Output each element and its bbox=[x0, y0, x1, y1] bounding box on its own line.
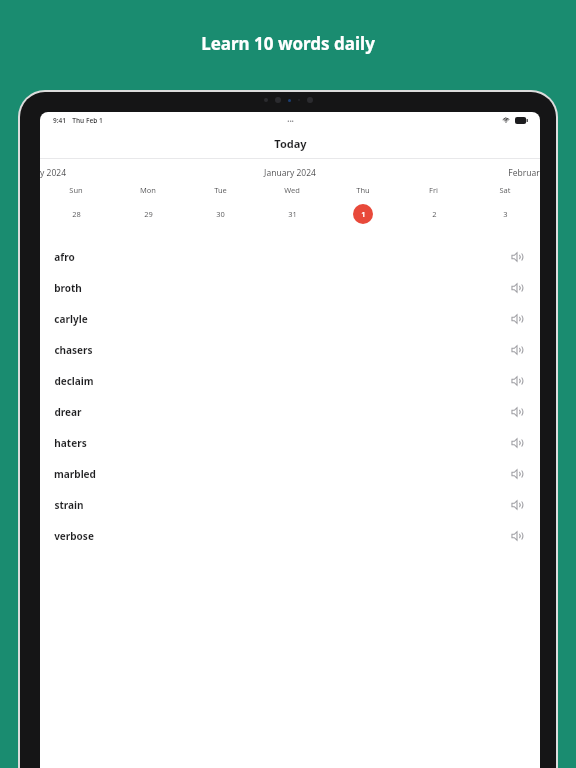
button[interactable]: Wed bbox=[256, 185, 327, 224]
button[interactable]: Tue bbox=[184, 185, 256, 224]
staticText: Tue bbox=[214, 185, 227, 195]
button[interactable]: broth bbox=[40, 272, 540, 303]
button[interactable]: marbled bbox=[40, 458, 540, 489]
button[interactable]: Mon bbox=[112, 185, 184, 224]
staticText: 9:41 bbox=[53, 116, 66, 125]
staticText: Thu bbox=[356, 185, 370, 195]
staticText: marbled bbox=[54, 467, 96, 481]
button[interactable]: verbose bbox=[40, 520, 540, 551]
button[interactable]: afro bbox=[40, 241, 540, 272]
staticText: strain bbox=[54, 498, 84, 512]
staticText: 2 bbox=[432, 209, 437, 219]
staticText: Februar bbox=[508, 167, 540, 179]
staticText: carlyle bbox=[54, 312, 88, 326]
button[interactable]: Sat bbox=[469, 185, 540, 224]
button[interactable]: strain bbox=[40, 489, 540, 520]
staticText: Sun bbox=[69, 185, 83, 195]
staticText: 31 bbox=[288, 209, 297, 219]
staticText: afro bbox=[54, 250, 75, 264]
button[interactable]: Pronounce haters bbox=[508, 434, 526, 452]
staticText: Sat bbox=[499, 185, 511, 195]
staticText: declaim bbox=[54, 374, 94, 388]
staticText: verbose bbox=[54, 529, 94, 543]
button[interactable]: Sun bbox=[40, 185, 112, 224]
button[interactable]: declaim bbox=[40, 365, 540, 396]
staticText: 1 bbox=[361, 209, 366, 219]
button[interactable]: Pronounce drear bbox=[508, 403, 526, 421]
staticText: ··· bbox=[287, 115, 294, 126]
button[interactable]: haters bbox=[40, 427, 540, 458]
staticText: Mon bbox=[140, 185, 156, 195]
staticText: Today bbox=[274, 136, 307, 151]
staticText: Wed bbox=[284, 185, 300, 195]
staticText: Thu Feb 1 bbox=[72, 116, 103, 125]
button[interactable]: carlyle bbox=[40, 303, 540, 334]
staticText: broth bbox=[54, 281, 82, 295]
staticText: 28 bbox=[72, 209, 81, 219]
button[interactable]: Fri bbox=[398, 185, 469, 224]
button[interactable]: Pronounce strain bbox=[508, 496, 526, 514]
button[interactable]: Pronounce marbled bbox=[508, 465, 526, 483]
button[interactable]: drear bbox=[40, 396, 540, 427]
button[interactable]: Pronounce chasers bbox=[508, 341, 526, 359]
button[interactable]: Pronounce broth bbox=[508, 279, 526, 297]
button[interactable]: Thu bbox=[327, 185, 398, 224]
staticText: y 2024 bbox=[40, 167, 66, 179]
staticText: Fri bbox=[429, 185, 438, 195]
staticText: Learn 10 words daily bbox=[201, 32, 375, 55]
button[interactable]: Pronounce verbose bbox=[508, 527, 526, 545]
staticText: 29 bbox=[144, 209, 153, 219]
staticText: January 2024 bbox=[264, 167, 316, 179]
staticText: 30 bbox=[216, 209, 225, 219]
staticText: drear bbox=[54, 405, 82, 419]
staticText: haters bbox=[54, 436, 87, 450]
button[interactable]: Pronounce carlyle bbox=[508, 310, 526, 328]
button[interactable]: Pronounce declaim bbox=[508, 372, 526, 390]
staticText: chasers bbox=[54, 343, 93, 357]
button[interactable]: Pronounce afro bbox=[508, 248, 526, 266]
button[interactable]: chasers bbox=[40, 334, 540, 365]
staticText: 3 bbox=[503, 209, 508, 219]
